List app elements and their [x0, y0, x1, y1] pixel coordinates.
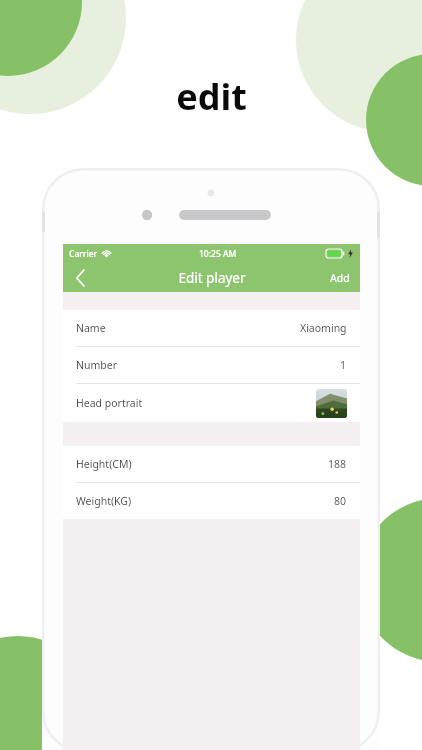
staticText: 1	[340, 358, 347, 372]
staticText: 188	[328, 457, 347, 471]
button[interactable]: Name	[63, 310, 360, 347]
staticText: Head portrait	[76, 396, 143, 410]
button[interactable]: Weight(KG)	[63, 483, 360, 519]
button[interactable]: Height(CM)	[63, 446, 360, 483]
staticText: Edit player	[178, 269, 246, 287]
staticText: Weight(KG)	[76, 494, 132, 508]
staticText: 80	[334, 494, 347, 508]
staticText: Xiaoming	[300, 321, 347, 335]
staticText: edit	[176, 72, 247, 121]
button[interactable]: Add	[320, 263, 360, 292]
staticText: Carrier	[69, 248, 98, 260]
staticText: Name	[76, 321, 106, 335]
staticText: Height(CM)	[76, 457, 132, 471]
staticText: Number	[76, 358, 118, 372]
staticText: Add	[330, 271, 350, 285]
button[interactable]: Back	[63, 263, 97, 292]
button[interactable]: Number	[63, 347, 360, 384]
staticText: 10:25 AM	[199, 248, 237, 260]
button[interactable]: Head portrait	[63, 384, 360, 422]
